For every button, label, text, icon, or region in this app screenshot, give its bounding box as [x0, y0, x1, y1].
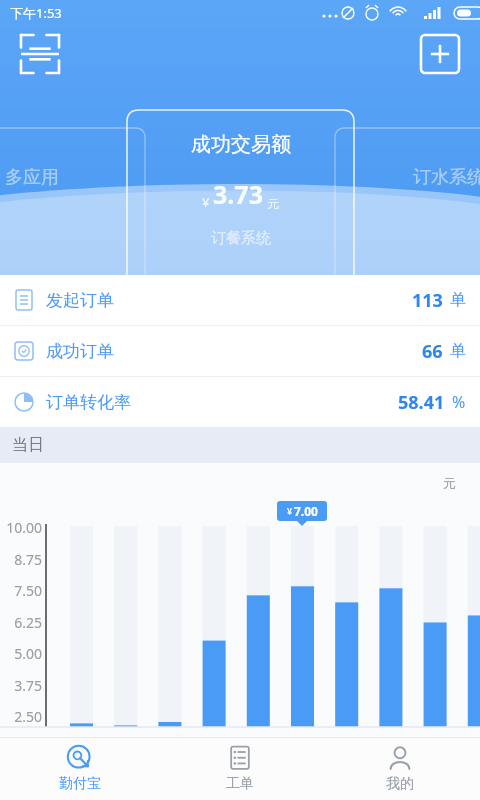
staticText: 当日	[12, 435, 44, 455]
staticText: %	[452, 391, 466, 413]
staticText: 发起订单	[46, 290, 114, 311]
staticText: ¥	[287, 505, 293, 517]
staticText: 6.25	[0, 613, 42, 632]
staticText: 我的	[386, 775, 414, 793]
staticText: 66	[422, 339, 443, 364]
button[interactable]: 扫一扫	[16, 30, 64, 78]
staticText: 订餐系统	[211, 229, 271, 248]
staticText: 10.00	[0, 518, 42, 537]
staticText: 多应用	[5, 166, 59, 189]
staticText: 成功订单	[46, 341, 114, 362]
button[interactable]: 订水系统	[335, 128, 480, 275]
staticText: 5.00	[0, 644, 42, 663]
staticText: 58.41	[398, 390, 445, 415]
staticText: 元	[267, 196, 279, 211]
staticText: 订单转化率	[46, 392, 131, 413]
button[interactable]: 我的	[320, 738, 480, 800]
staticText: 单	[450, 290, 466, 310]
staticText: ¥	[202, 193, 210, 211]
staticText: 元	[443, 475, 456, 491]
button[interactable]: 订单转化率	[0, 377, 480, 427]
staticText: 订水系统	[413, 166, 480, 189]
staticText: 113	[412, 288, 443, 313]
button[interactable]: 发起订单	[0, 275, 480, 325]
button[interactable]: 添加	[416, 30, 464, 78]
staticText: 7.50	[0, 581, 42, 600]
staticText: 3.75	[0, 676, 42, 695]
staticText: 2.50	[0, 707, 42, 726]
staticText: 7.00	[294, 503, 318, 519]
button[interactable]: 勤付宝	[0, 738, 160, 800]
staticText: 3.73	[213, 177, 263, 211]
button[interactable]: 成功订单	[0, 326, 480, 376]
staticText: 单	[450, 341, 466, 361]
button[interactable]: 多应用	[0, 128, 145, 275]
staticText: 勤付宝	[59, 775, 101, 793]
button[interactable]: 工单	[160, 738, 320, 800]
staticText: 下午1:53	[10, 4, 62, 22]
button[interactable]: 成功交易额	[127, 110, 354, 275]
staticText: 8.75	[0, 550, 42, 569]
staticText: 成功交易额	[191, 132, 291, 157]
staticText: 工单	[226, 775, 254, 793]
